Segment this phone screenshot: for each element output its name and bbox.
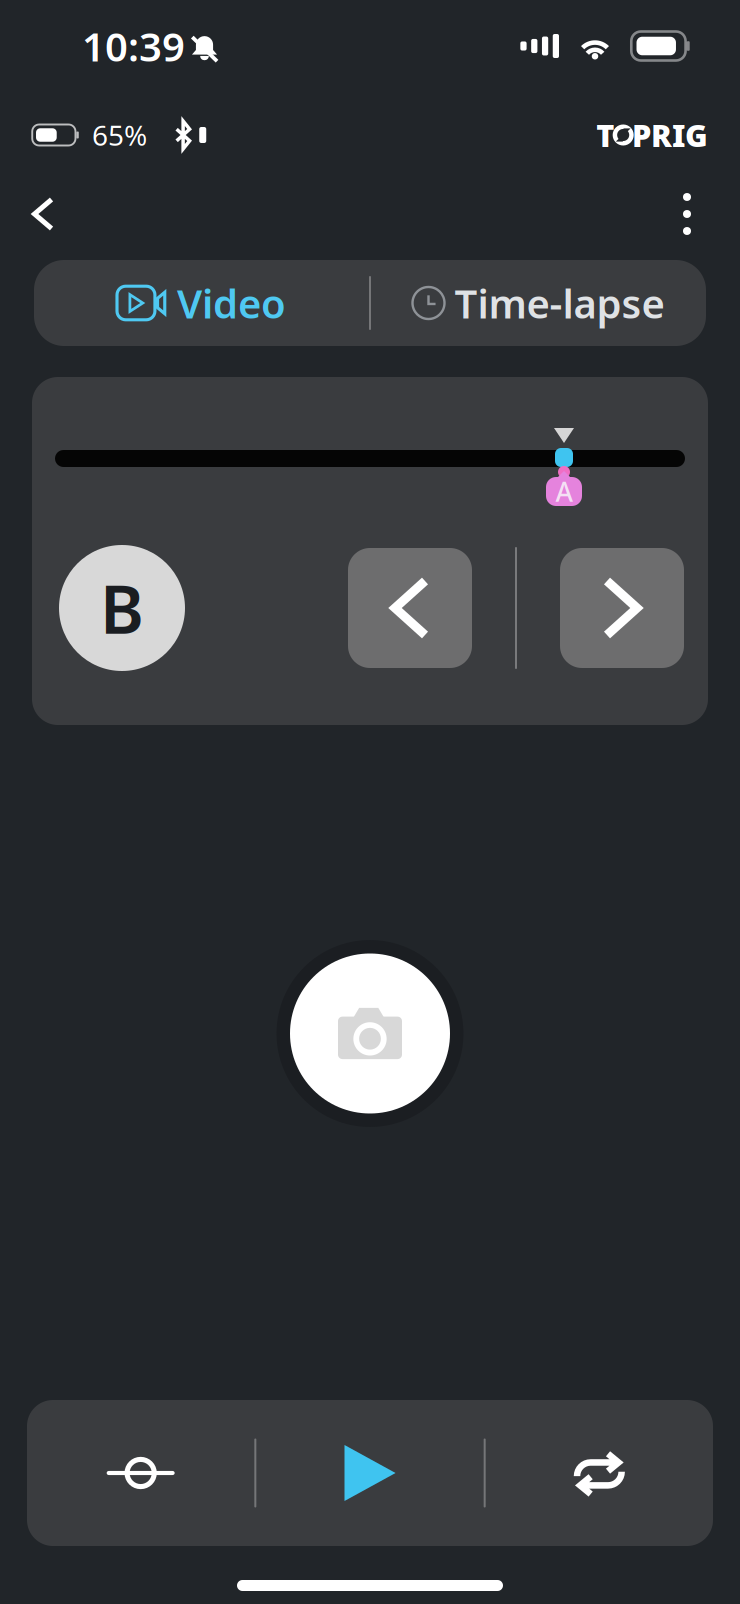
button[interactable]: Record <box>276 940 463 1127</box>
button[interactable]: Loop <box>486 1400 713 1546</box>
staticText: A <box>555 474 572 509</box>
button[interactable]: Back <box>15 186 71 242</box>
staticText: 10:39 <box>82 19 185 72</box>
staticText: Time-lapse <box>454 276 664 329</box>
staticText: B <box>100 564 144 652</box>
staticText: Video <box>177 276 286 329</box>
button[interactable]: Next <box>560 548 684 668</box>
button[interactable]: Keyframe <box>27 1400 254 1546</box>
button[interactable]: Play <box>256 1400 484 1546</box>
button[interactable]: B <box>59 545 185 671</box>
button[interactable]: More options <box>659 186 715 242</box>
button[interactable]: Video <box>34 260 369 346</box>
button[interactable]: Time-lapse <box>371 260 706 346</box>
button[interactable]: Previous <box>348 548 472 668</box>
staticText: 65% <box>92 116 147 154</box>
staticText: T <box>596 115 614 155</box>
staticText: PRIG <box>632 115 708 155</box>
